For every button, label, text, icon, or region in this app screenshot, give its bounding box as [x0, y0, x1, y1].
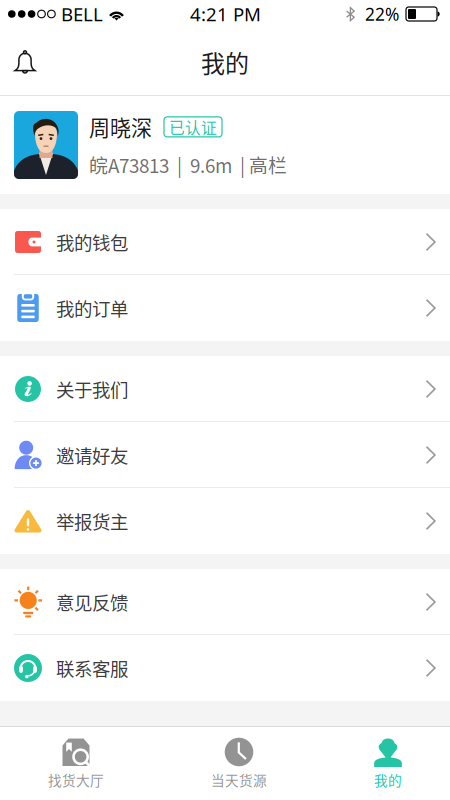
staticText: 当天货源 [211, 770, 267, 790]
staticText: 我的钱包 [56, 229, 128, 255]
staticText: 邀请好友 [56, 442, 128, 468]
staticText: 皖A73813 | 9.6m | 高栏 [89, 151, 287, 178]
staticText: BELL [61, 2, 103, 26]
button[interactable]: 周晓深 [0, 96, 450, 194]
staticText: 我的订单 [56, 295, 128, 321]
button[interactable]: 意见反馈 [0, 569, 450, 635]
staticText: 联系客服 [56, 655, 128, 681]
button[interactable]: 找货大厅 [0, 726, 152, 800]
button[interactable]: 联系客服 [0, 635, 450, 701]
button[interactable]: 通知 [0, 38, 52, 86]
button[interactable]: 我的订单 [0, 275, 450, 341]
button[interactable]: 邀请好友 [0, 422, 450, 488]
button[interactable]: 当天货源 [152, 726, 326, 800]
button[interactable]: 我的 [326, 726, 450, 800]
button[interactable]: 关于我们 [0, 356, 450, 422]
staticText: 我的 [374, 770, 402, 790]
staticText: 4:21 PM [190, 2, 261, 26]
staticText: 找货大厅 [48, 770, 104, 790]
staticText: 我的 [201, 45, 249, 79]
button[interactable]: 举报货主 [0, 488, 450, 554]
staticText: 关于我们 [56, 376, 128, 402]
button[interactable]: 我的钱包 [0, 209, 450, 275]
staticText: 已认证 [169, 115, 217, 138]
staticText: 周晓深 [89, 112, 152, 142]
staticText: 22% [365, 2, 399, 25]
staticText: 意见反馈 [56, 589, 128, 615]
staticText: 举报货主 [56, 508, 128, 534]
